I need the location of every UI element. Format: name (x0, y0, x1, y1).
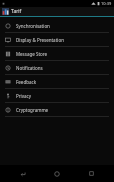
button[interactable]: Message Store (0, 47, 114, 60)
staticText: Synchronisation (16, 23, 50, 29)
button[interactable]: Notifications (0, 61, 114, 74)
staticText: Feedback (16, 79, 37, 85)
button[interactable]: Cryptogramme (0, 103, 114, 116)
button[interactable]: Display & Presentation (0, 33, 114, 46)
staticText: Cryptogramme (16, 107, 49, 113)
button[interactable]: Recent apps (80, 165, 102, 182)
staticText: 10:39 (101, 1, 112, 6)
button[interactable]: Synchronisation (0, 19, 114, 32)
staticText: Display & Presentation (16, 37, 64, 43)
button[interactable]: Back (12, 165, 34, 182)
button[interactable]: Feedback (0, 75, 114, 88)
staticText: Message Store (16, 51, 48, 57)
staticText: Tarif (11, 8, 22, 15)
button[interactable]: Privacy (0, 89, 114, 102)
button[interactable]: Tarif (0, 7, 114, 16)
button[interactable]: Home (46, 165, 68, 182)
staticText: Notifications (16, 65, 43, 71)
staticText: Privacy (16, 93, 32, 99)
